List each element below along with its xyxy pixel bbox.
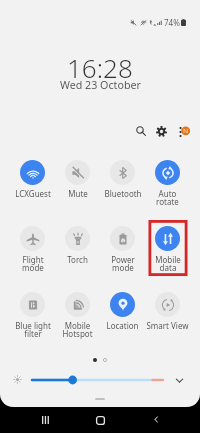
button[interactable]: Mobile data	[145, 220, 190, 286]
staticText: Location	[106, 320, 139, 331]
button[interactable]: Mute	[55, 154, 100, 220]
button[interactable]: Smart View	[145, 286, 190, 352]
button[interactable]: Bluetooth	[100, 154, 145, 220]
button[interactable]: Search	[132, 122, 150, 140]
button[interactable]	[32, 374, 163, 386]
staticText: 74%	[164, 17, 180, 28]
button[interactable]: Recents	[28, 408, 61, 432]
button[interactable]: Mobile Hotspot	[55, 286, 100, 352]
button[interactable]: Settings	[152, 122, 170, 140]
button[interactable]: LCXGuest	[10, 154, 55, 220]
staticText: Mute	[68, 188, 88, 199]
button[interactable]: Flight mode	[10, 220, 55, 286]
staticText: Flight mode	[22, 254, 44, 273]
button[interactable]: Location	[100, 286, 145, 352]
staticText: Power mode	[111, 254, 135, 273]
button[interactable]: Torch	[55, 220, 100, 286]
button[interactable]: Expand	[171, 372, 187, 388]
staticText: Smart View	[146, 320, 189, 331]
staticText: 16:28	[67, 50, 133, 85]
staticText: Wed 23 October	[60, 78, 141, 93]
staticText: Mobile data	[155, 254, 181, 273]
staticText: Blue light filter	[15, 320, 51, 339]
button[interactable]: Auto rotate	[145, 154, 190, 220]
button[interactable]: Back	[140, 408, 173, 432]
staticText: Bluetooth	[104, 188, 142, 199]
button[interactable]: Blue light filter	[10, 286, 55, 352]
button[interactable]: Power mode	[100, 220, 145, 286]
staticText: Torch	[67, 254, 88, 265]
staticText: Auto rotate	[156, 188, 179, 207]
button[interactable]: Home	[84, 408, 117, 432]
staticText: LCXGuest	[15, 188, 51, 199]
button[interactable]: More options	[175, 122, 195, 142]
staticText: Mobile Hotspot	[62, 320, 93, 339]
